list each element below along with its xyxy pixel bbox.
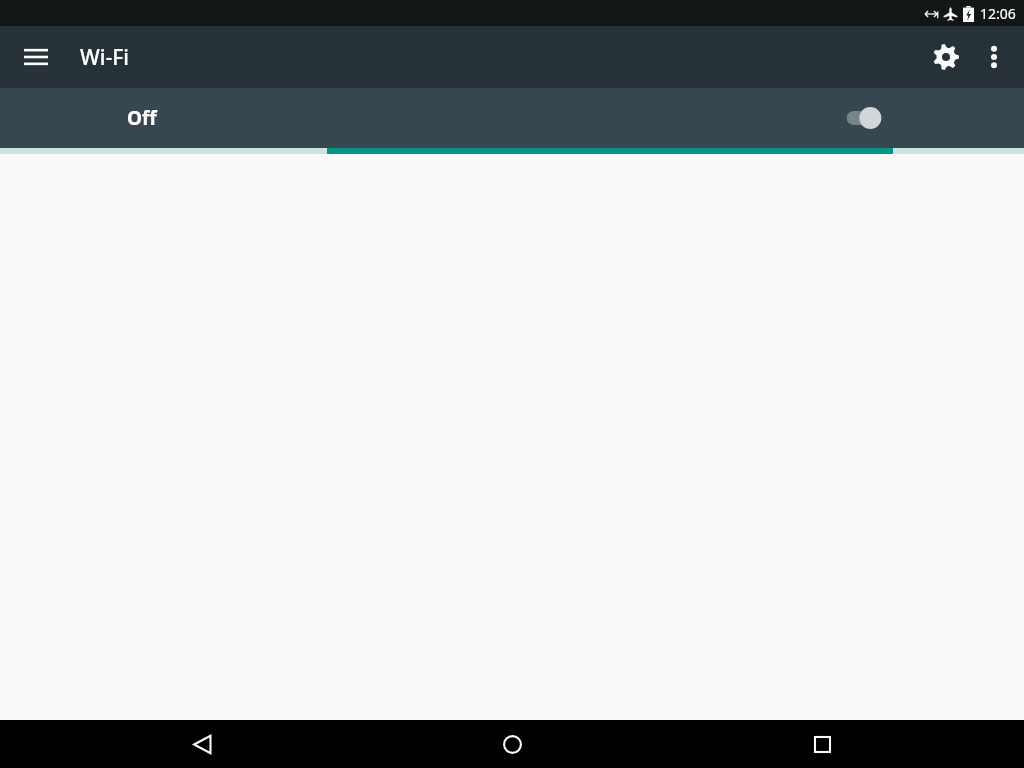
staticText: 12:06 bbox=[980, 4, 1016, 23]
button[interactable]: More options bbox=[970, 33, 1018, 81]
button[interactable]: Settings bbox=[922, 33, 970, 81]
button[interactable]: Wi-Fi toggle, off bbox=[838, 98, 894, 138]
button[interactable]: Home bbox=[480, 720, 544, 768]
button[interactable]: Recent apps bbox=[790, 720, 854, 768]
staticText: Off bbox=[127, 105, 157, 131]
button[interactable]: Off bbox=[0, 88, 1024, 148]
staticText: Wi-Fi bbox=[80, 43, 129, 72]
button[interactable]: Open navigation drawer bbox=[12, 33, 60, 81]
button[interactable]: Back bbox=[170, 720, 234, 768]
